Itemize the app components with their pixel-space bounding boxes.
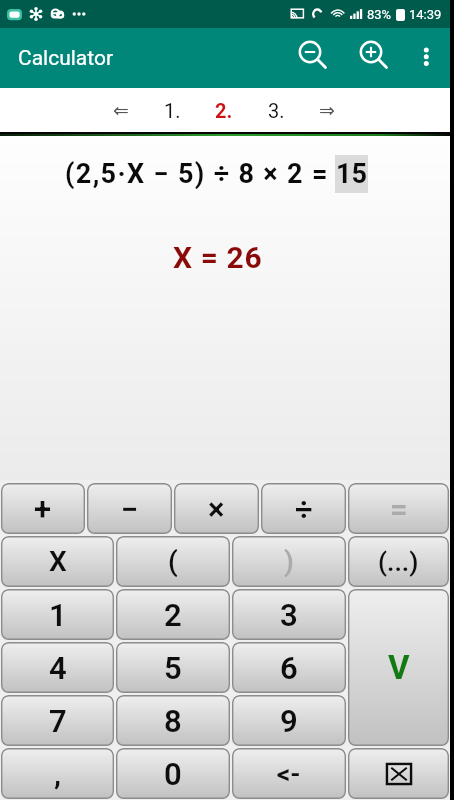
- button[interactable]: ): [232, 536, 346, 587]
- staticText: 3: [280, 597, 298, 633]
- staticText: 2.: [215, 99, 233, 122]
- staticText: 4: [49, 650, 67, 686]
- button[interactable]: X: [1, 536, 114, 587]
- staticText: ⇒: [319, 99, 335, 121]
- staticText: V: [388, 648, 410, 687]
- button[interactable]: ,: [1, 748, 114, 799]
- staticText: 1.: [164, 99, 181, 122]
- staticText: (...): [378, 547, 419, 577]
- button[interactable]: V: [348, 589, 449, 746]
- staticText: +: [34, 491, 52, 527]
- staticText: =: [390, 491, 408, 527]
- staticText: (2,5·X − 5) ÷ 8 × 2 =: [65, 158, 329, 190]
- button[interactable]: (: [116, 536, 230, 587]
- button[interactable]: Previous page: [103, 88, 139, 132]
- staticText: Calculator: [18, 46, 114, 71]
- staticText: 8: [164, 703, 182, 739]
- button[interactable]: Zoom in: [347, 32, 399, 84]
- staticText: ): [284, 545, 294, 578]
- button[interactable]: 2: [116, 589, 230, 640]
- button[interactable]: 1.: [154, 88, 190, 132]
- staticText: −: [121, 491, 139, 527]
- staticText: <-: [277, 759, 301, 789]
- button[interactable]: 8: [116, 695, 230, 746]
- staticText: 6: [280, 650, 298, 686]
- staticText: ÷: [295, 491, 313, 527]
- button[interactable]: 2.: [206, 88, 242, 132]
- button[interactable]: <-: [232, 748, 346, 799]
- button[interactable]: More options: [406, 36, 446, 80]
- staticText: 3.: [268, 99, 285, 122]
- staticText: X: [49, 545, 67, 578]
- button[interactable]: 9: [232, 695, 346, 746]
- staticText: 14:39: [409, 7, 442, 22]
- staticText: 5: [164, 650, 182, 686]
- button[interactable]: 1: [1, 589, 114, 640]
- staticText: 7: [49, 703, 67, 739]
- button[interactable]: ÷: [261, 483, 346, 534]
- staticText: ×: [208, 491, 225, 527]
- button[interactable]: −: [87, 483, 172, 534]
- staticText: (: [168, 545, 178, 578]
- button[interactable]: 6: [232, 642, 346, 693]
- staticText: 2: [164, 597, 182, 633]
- button[interactable]: 5: [116, 642, 230, 693]
- button[interactable]: 3: [232, 589, 346, 640]
- staticText: 15: [336, 158, 367, 190]
- button[interactable]: Next page: [309, 88, 345, 132]
- button[interactable]: 0: [116, 748, 230, 799]
- button[interactable]: Zoom out: [286, 32, 338, 84]
- button[interactable]: 4: [1, 642, 114, 693]
- button[interactable]: 7: [1, 695, 114, 746]
- button[interactable]: +: [1, 483, 85, 534]
- staticText: ,: [54, 756, 62, 791]
- staticText: 83%: [367, 7, 392, 22]
- button[interactable]: (...): [348, 536, 449, 587]
- staticText: 0: [164, 756, 182, 792]
- staticText: ⇐: [113, 99, 129, 121]
- staticText: 9: [280, 703, 298, 739]
- button[interactable]: Clear all: [348, 748, 449, 799]
- staticText: 1: [49, 597, 67, 633]
- button[interactable]: 3.: [258, 88, 294, 132]
- button[interactable]: =: [348, 483, 449, 534]
- staticText: X = 26: [173, 240, 263, 275]
- button[interactable]: ×: [174, 483, 259, 534]
